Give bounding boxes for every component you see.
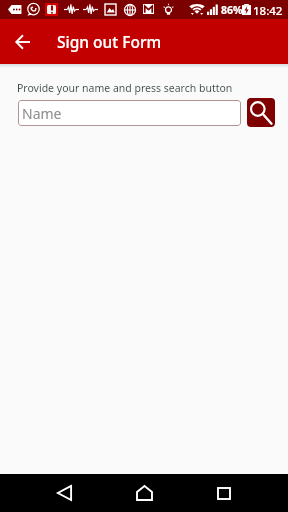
button[interactable]: Search bbox=[247, 98, 275, 127]
button[interactable]: Back bbox=[40, 478, 88, 508]
staticText: 18:42 bbox=[253, 3, 283, 19]
button[interactable]: Back bbox=[6, 25, 40, 59]
staticText: Sign out Form bbox=[57, 31, 162, 52]
button[interactable]: Home bbox=[120, 478, 168, 508]
staticText: 86% bbox=[221, 3, 243, 17]
staticText: Name bbox=[22, 104, 62, 123]
button[interactable]: Name bbox=[18, 100, 241, 126]
staticText: Provide your name and press search butto… bbox=[17, 81, 233, 95]
button[interactable]: Recents bbox=[200, 478, 248, 508]
